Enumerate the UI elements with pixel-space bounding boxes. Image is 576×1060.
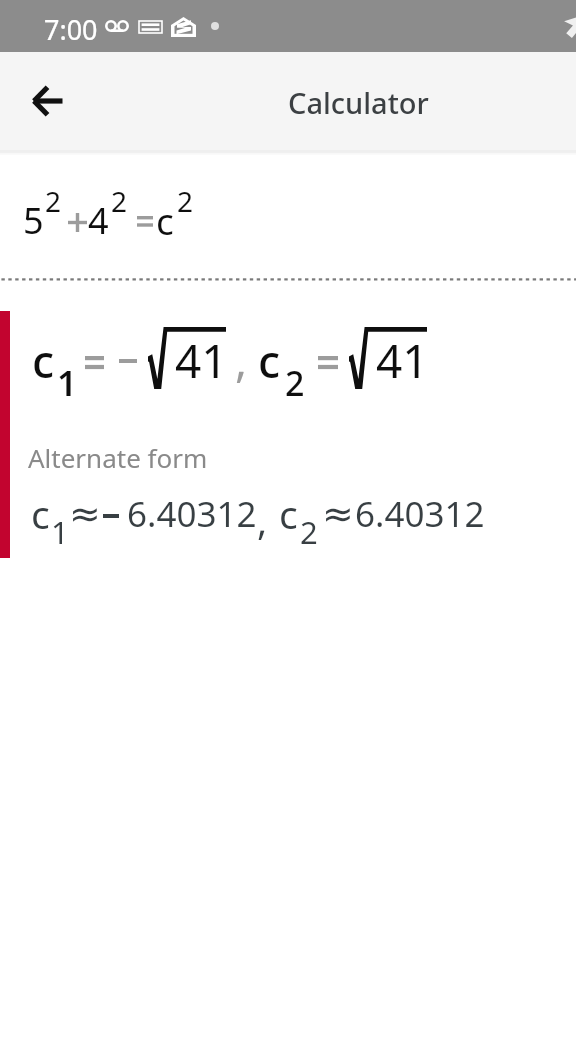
staticText: ≈ (69, 492, 101, 536)
staticText: c (279, 487, 298, 540)
staticText: 1 (51, 511, 69, 553)
staticText: c (31, 487, 50, 540)
staticText: 4 (88, 196, 109, 245)
staticText: 2 (45, 182, 62, 220)
staticText: 41 (376, 329, 429, 392)
staticText: Alternate form (28, 440, 208, 475)
staticText: 1 (57, 359, 78, 407)
staticText: ≈ (322, 492, 354, 536)
staticText: , (257, 494, 268, 546)
staticText: 2 (285, 360, 305, 406)
staticText: 5 (23, 196, 44, 245)
staticText: 41 (175, 329, 228, 392)
button[interactable]: Expression 5 squared plus 4 squared equa… (0, 156, 576, 277)
staticText: 7:00 (44, 11, 98, 48)
staticText: c (156, 195, 174, 245)
staticText: 6.40312 (355, 490, 485, 538)
staticText: 2 (300, 511, 318, 553)
button[interactable]: Back (16, 69, 80, 133)
staticText: 6.40312 (127, 490, 257, 538)
staticText: 2 (177, 182, 194, 220)
staticText: , (235, 329, 248, 390)
staticText: c (258, 330, 281, 391)
staticText: 2 (111, 182, 128, 220)
staticText: c (32, 330, 55, 391)
button[interactable]: Solution result card (0, 311, 576, 558)
staticText: Calculator (288, 83, 429, 122)
